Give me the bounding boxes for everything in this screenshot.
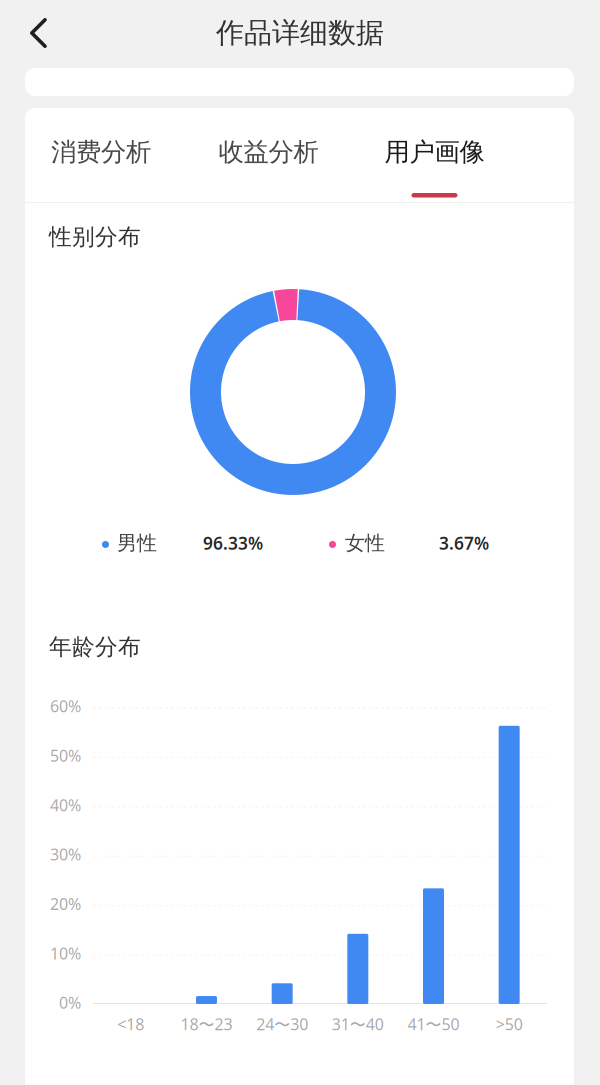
staticText: 年龄分布 [49,633,141,661]
staticText: 31〜40 [332,1013,384,1035]
staticText: 60% [50,695,81,717]
staticText: 50% [50,745,81,766]
button[interactable]: 收益分析 [193,137,343,229]
staticText: 20% [50,893,81,914]
staticText: 男性 [117,531,157,555]
staticText: 消费分析 [51,136,151,167]
staticText: 女性 [345,531,385,555]
staticText: 用户画像 [384,136,484,167]
staticText: 10% [50,943,81,964]
staticText: 18〜23 [180,1013,232,1035]
staticText: 0% [59,992,81,1013]
button[interactable]: Back [14,9,62,57]
staticText: 24〜30 [256,1013,308,1035]
staticText: 96.33% [203,531,263,554]
staticText: 41〜50 [407,1013,459,1035]
staticText: 性别分布 [49,223,141,251]
staticText: 3.67% [439,531,489,554]
staticText: 作品详细数据 [216,16,384,50]
staticText: <18 [117,1013,144,1035]
staticText: 40% [50,794,81,815]
button[interactable]: 消费分析 [26,137,176,229]
staticText: >50 [496,1013,523,1035]
staticText: 30% [50,844,81,865]
button[interactable]: 用户画像 [359,137,509,229]
staticText: 收益分析 [218,136,318,167]
